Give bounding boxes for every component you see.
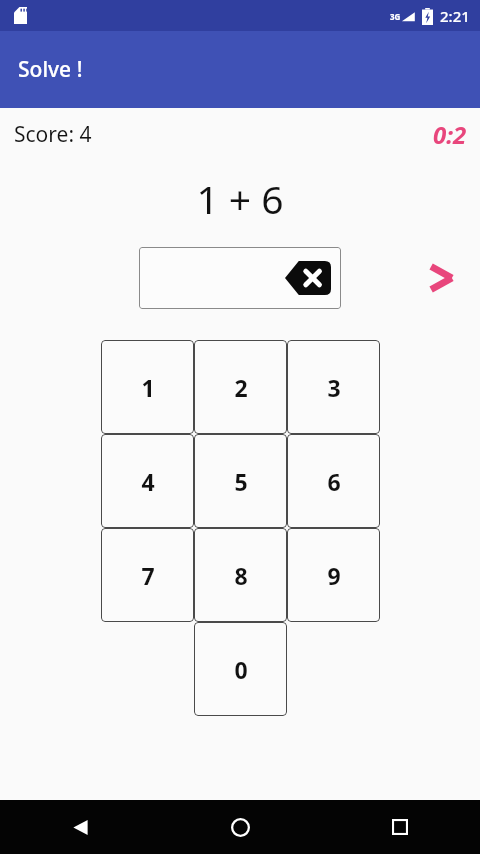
staticText: 2:21 <box>440 6 470 26</box>
staticText: 3G <box>390 11 401 22</box>
staticText: Solve ! <box>18 55 83 84</box>
button[interactable]: Recent apps <box>320 800 480 854</box>
staticText: 1 + 6 <box>196 172 284 225</box>
staticText: 0 <box>234 654 248 685</box>
staticText: 0:2 <box>433 118 467 151</box>
button[interactable]: 2 <box>194 340 287 434</box>
button[interactable]: Back <box>0 800 160 854</box>
button[interactable]: 7 <box>101 528 194 622</box>
staticText: 4 <box>141 466 155 497</box>
button[interactable]: 1 <box>101 340 194 434</box>
staticText: 9 <box>327 560 341 591</box>
button[interactable]: 4 <box>101 434 194 528</box>
button[interactable]: Submit answer <box>420 257 462 299</box>
button[interactable]: 3 <box>287 340 380 434</box>
button[interactable]: 5 <box>194 434 287 528</box>
button[interactable]: 6 <box>287 434 380 528</box>
button[interactable]: Backspace <box>285 261 331 295</box>
button[interactable]: 9 <box>287 528 380 622</box>
button[interactable]: 0 <box>194 622 287 716</box>
staticText: 6 <box>327 466 341 497</box>
staticText: 5 <box>234 466 248 497</box>
staticText: 1 <box>141 372 155 403</box>
staticText: 3 <box>327 372 341 403</box>
button[interactable]: 8 <box>194 528 287 622</box>
staticText: 2 <box>234 372 248 403</box>
button[interactable]: Home <box>160 800 320 854</box>
button[interactable]: Answer field <box>139 247 341 309</box>
staticText: Score: 4 <box>14 120 92 149</box>
staticText: 8 <box>234 560 248 591</box>
staticText: 7 <box>141 560 155 591</box>
